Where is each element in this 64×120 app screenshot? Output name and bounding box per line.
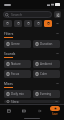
button[interactable]: Sounds options	[55, 51, 60, 56]
button[interactable]: Home	[3, 105, 14, 116]
button[interactable]: Evening	[33, 90, 60, 98]
button[interactable]: Filter 1	[3, 20, 12, 27]
button[interactable]: Duration	[33, 40, 60, 48]
button[interactable]: Save	[49, 106, 61, 116]
button[interactable]: Queue	[34, 105, 45, 116]
staticText: Calm	[40, 72, 48, 76]
button[interactable]: Browse	[18, 105, 29, 116]
button[interactable]: Daily mix	[4, 90, 31, 98]
button[interactable]: Ambient	[33, 60, 60, 68]
staticText: Filters	[4, 32, 14, 36]
staticText: Search	[11, 12, 23, 17]
button[interactable]: Filter 4	[34, 20, 42, 27]
staticText: Daily mix	[11, 92, 24, 96]
staticText: Mixes	[4, 82, 13, 86]
staticText: Sleep	[11, 100, 19, 103]
staticText: Save	[52, 112, 58, 116]
staticText: Duration	[40, 42, 53, 46]
staticText: Nature	[11, 62, 21, 66]
staticText: Ambient	[40, 62, 52, 66]
button[interactable]: Filter 3	[24, 20, 32, 27]
button[interactable]: Nature	[4, 60, 31, 68]
staticText: Sounds	[4, 52, 16, 56]
button[interactable]: Filter options	[54, 11, 61, 18]
staticText: Genre	[11, 42, 20, 46]
button[interactable]: Sleep	[4, 100, 60, 103]
button[interactable]: Filters options	[55, 31, 60, 36]
button[interactable]: Filter 2	[14, 20, 22, 27]
button[interactable]: Mixes options	[55, 81, 60, 86]
button[interactable]: Focus	[4, 70, 31, 78]
button[interactable]: Search	[3, 11, 52, 18]
staticText: Focus	[11, 72, 20, 76]
staticText: Evening	[40, 92, 52, 96]
button[interactable]: Filter 5	[44, 20, 52, 27]
button[interactable]: Genre	[4, 40, 31, 48]
button[interactable]: More filters	[54, 20, 61, 27]
button[interactable]: Calm	[33, 70, 60, 78]
